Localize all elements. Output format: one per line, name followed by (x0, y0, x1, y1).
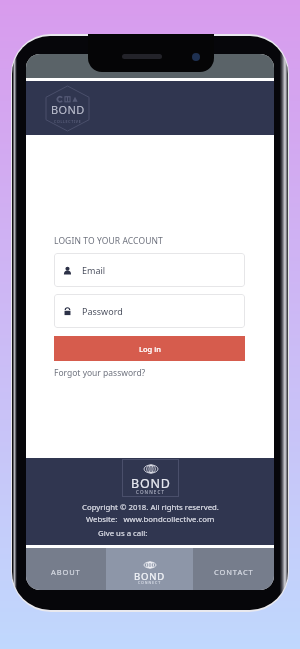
staticText: CONNECT (136, 489, 166, 494)
staticText: Email (82, 264, 106, 276)
staticText: Log in (139, 344, 161, 354)
staticText: LOGIN TO YOUR ACCOUNT (54, 235, 163, 247)
button[interactable]: BOND (106, 548, 193, 590)
button[interactable]: BOND (122, 459, 179, 497)
staticText: BOND (131, 475, 171, 492)
staticText: Website: www.bondcollective.com (86, 514, 215, 525)
button[interactable]: Log in (54, 336, 245, 361)
button[interactable]: Email (54, 253, 245, 287)
staticText: COLLECTIVE (54, 119, 82, 124)
button[interactable]: ABOUT (26, 548, 106, 590)
staticText: Password (82, 305, 123, 317)
button[interactable]: Password (54, 294, 245, 328)
button[interactable]: Forgot your password? (54, 367, 146, 379)
staticText: CONTACT (214, 567, 254, 577)
staticText: Copyright © 2018. All rights reserved. (82, 502, 219, 513)
staticText: BOND (134, 570, 165, 583)
staticText: CONNECT (138, 580, 162, 585)
staticText: ABOUT (51, 567, 81, 577)
button[interactable]: CONTACT (193, 548, 274, 590)
staticText: BOND (51, 102, 85, 117)
button[interactable]: Give us a call: (98, 528, 148, 539)
